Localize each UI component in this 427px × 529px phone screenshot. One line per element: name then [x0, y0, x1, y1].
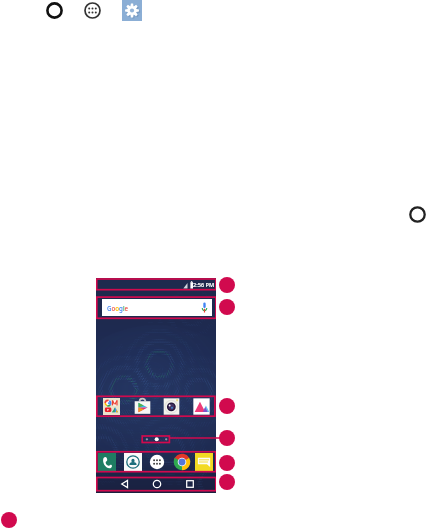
button[interactable]: Phone — [98, 453, 116, 471]
button[interactable]: Home — [46, 2, 63, 19]
staticText: Google — [107, 304, 129, 312]
button[interactable]: Camera — [163, 398, 180, 415]
staticText: 2:56 PM — [193, 281, 215, 289]
button[interactable]: Photos — [193, 398, 210, 415]
button[interactable]: Play Store — [134, 398, 151, 415]
button[interactable]: Settings — [122, 0, 142, 21]
button[interactable]: All apps — [148, 453, 166, 471]
button[interactable]: Contacts — [124, 453, 142, 471]
button[interactable]: Messages — [195, 453, 213, 471]
button[interactable]: Google — [102, 299, 212, 316]
button[interactable]: Step marker — [409, 206, 426, 223]
button[interactable]: Home — [149, 476, 165, 492]
button[interactable]: Recent apps — [182, 476, 198, 492]
button[interactable]: Back — [117, 476, 133, 492]
button[interactable]: All apps — [84, 2, 101, 19]
button[interactable]: Google folder — [103, 398, 120, 415]
button[interactable]: Chrome — [173, 453, 191, 471]
